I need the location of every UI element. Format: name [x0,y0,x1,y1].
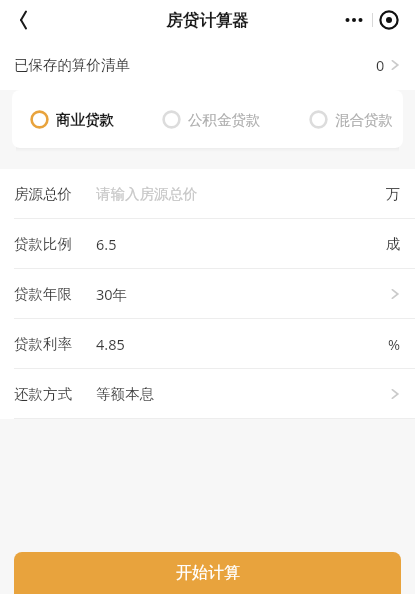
button[interactable]: 还款方式 [0,369,415,419]
staticText: 万 [386,185,401,203]
staticText: 等额本息 [96,385,389,403]
staticText: 还款方式 [14,385,72,403]
staticText: 混合贷款 [335,111,393,129]
staticText: % [388,334,401,354]
button[interactable]: 房源总价 [0,169,415,219]
staticText: 房贷计算器 [166,10,249,31]
button[interactable]: 已保存的算价清单 [0,40,415,90]
staticText: 贷款比例 [14,235,72,253]
button[interactable]: 贷款比例 [0,219,415,269]
button[interactable]: 贷款利率 [0,319,415,369]
staticText: 成 [386,235,401,253]
staticText: 已保存的算价清单 [14,56,376,74]
staticText: 6.5 [96,234,386,254]
button[interactable]: 商业贷款 [30,106,114,133]
staticText: 公积金贷款 [188,111,261,129]
button[interactable]: 公积金贷款 [162,106,261,133]
staticText: 开始计算 [176,563,240,583]
button[interactable]: Close [373,7,405,33]
staticText: 商业贷款 [56,111,114,129]
staticText: 30年 [96,284,389,304]
button[interactable]: Back [4,2,40,38]
staticText: 4.85 [96,334,388,354]
staticText: 0 [376,55,385,75]
staticText: 请输入房源总价 [96,185,386,203]
button[interactable]: 混合贷款 [309,106,393,133]
staticText: 贷款利率 [14,335,72,353]
staticText: 贷款年限 [14,285,72,303]
button[interactable]: 开始计算 [14,552,401,594]
button[interactable]: 贷款年限 [0,269,415,319]
button[interactable]: More [336,7,372,33]
staticText: 房源总价 [14,185,72,203]
